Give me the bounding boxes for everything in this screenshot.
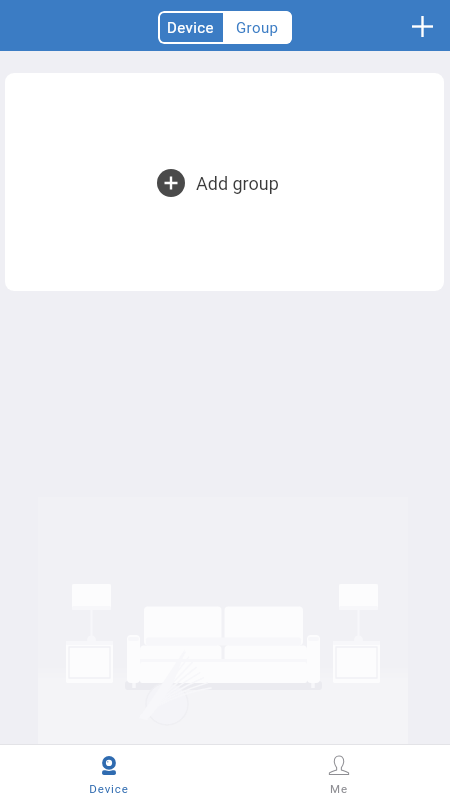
button[interactable]: Me [299, 745, 379, 800]
staticText: Group [236, 19, 279, 37]
staticText: Me [330, 782, 348, 795]
staticText: Device [89, 782, 129, 795]
button[interactable]: Device [69, 745, 149, 800]
button[interactable]: Add device [400, 4, 444, 48]
button[interactable]: Device [158, 11, 223, 44]
staticText: Device [167, 19, 214, 37]
button[interactable]: Group [223, 11, 292, 44]
button[interactable]: Add group [157, 169, 279, 197]
staticText: Add group [196, 173, 279, 194]
